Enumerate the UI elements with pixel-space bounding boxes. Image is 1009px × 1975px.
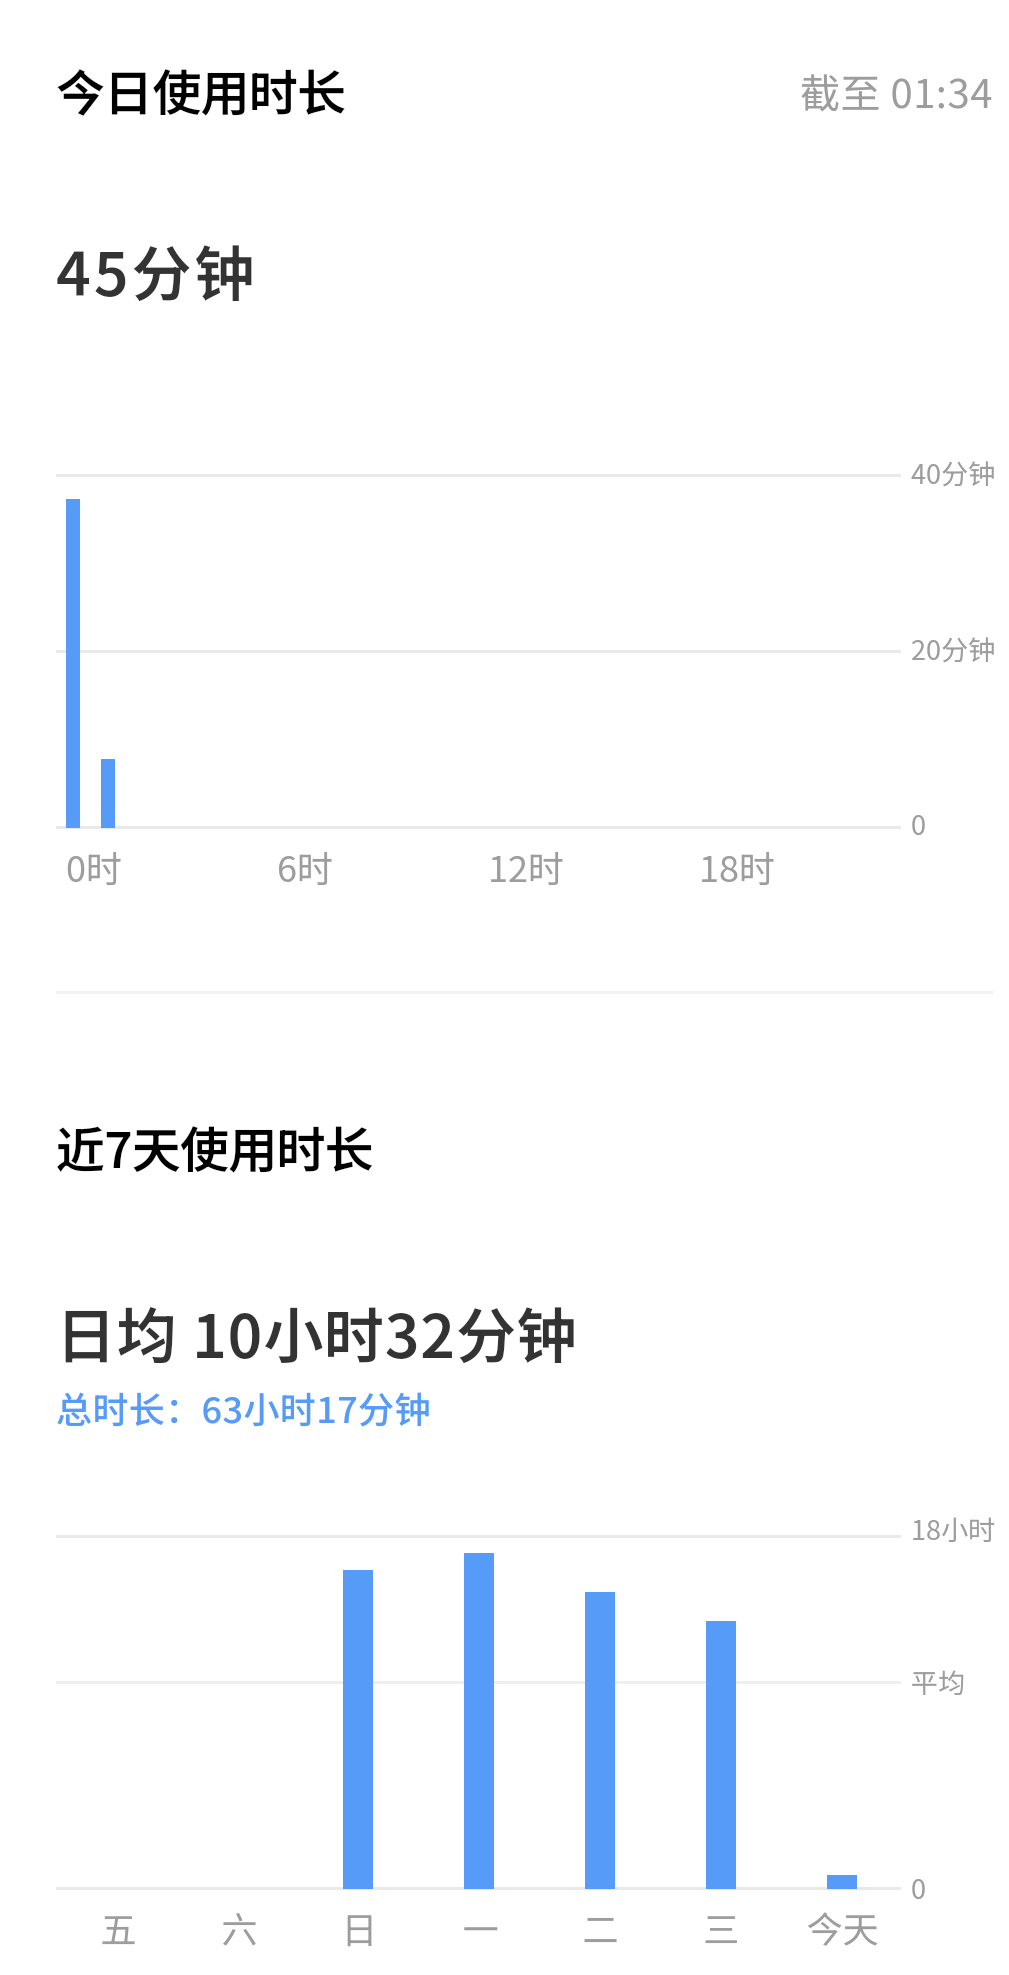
staticText: 6时 bbox=[277, 840, 333, 892]
button[interactable]: 今日使用时长 bbox=[0, 0, 1009, 991]
staticText: 总时长：63小时17分钟 bbox=[56, 1381, 431, 1433]
button[interactable]: 二 bbox=[541, 1529, 659, 1954]
staticText: 今天 bbox=[806, 1901, 879, 1953]
staticText: 18时 bbox=[699, 840, 775, 892]
button[interactable]: 近7天使用时长 bbox=[0, 994, 1009, 1975]
staticText: 日均 10小时32分钟 bbox=[56, 1288, 578, 1375]
staticText: 12时 bbox=[488, 840, 564, 892]
staticText: 五 bbox=[100, 1901, 137, 1953]
staticText: 0时 bbox=[66, 840, 122, 892]
staticText: 今日使用时长 bbox=[56, 54, 346, 125]
staticText: 20分钟 bbox=[911, 629, 995, 668]
staticText: 六 bbox=[221, 1901, 258, 1953]
button[interactable]: 今天 bbox=[783, 1529, 901, 1954]
button[interactable]: 日 bbox=[300, 1529, 418, 1954]
staticText: 40分钟 bbox=[911, 453, 995, 492]
staticText: 一 bbox=[462, 1901, 499, 1953]
staticText: 18小时 bbox=[911, 1509, 995, 1548]
staticText: 0 bbox=[911, 804, 926, 843]
staticText: 日 bbox=[341, 1901, 378, 1953]
button[interactable]: 三 bbox=[662, 1529, 780, 1954]
button[interactable]: 一 bbox=[421, 1529, 539, 1954]
staticText: 三 bbox=[703, 1901, 740, 1953]
other: 今日每小时使用时长柱状图 bbox=[0, 0, 1009, 991]
button[interactable]: 五 bbox=[59, 1529, 177, 1954]
button[interactable]: 六 bbox=[180, 1529, 298, 1954]
staticText: 二 bbox=[582, 1901, 619, 1953]
staticText: 近7天使用时长 bbox=[56, 1111, 373, 1182]
other: 近7天每日使用时长柱状图 bbox=[0, 994, 1009, 1975]
staticText: 0 bbox=[911, 1868, 926, 1907]
staticText: 截至 01:34 bbox=[800, 62, 993, 120]
staticText: 45分钟 bbox=[56, 226, 258, 313]
staticText: 平均 bbox=[911, 1662, 965, 1701]
